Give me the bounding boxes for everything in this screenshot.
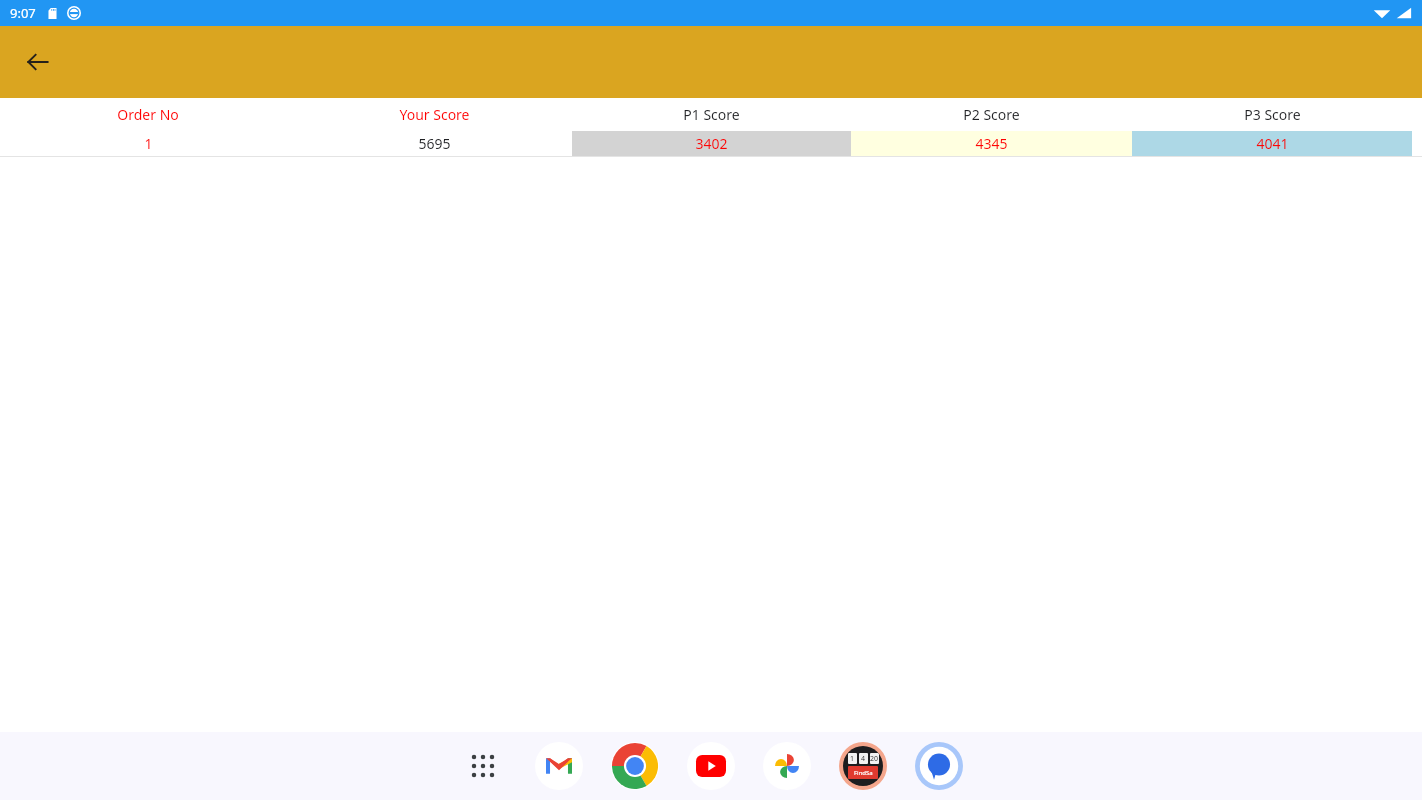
- button[interactable]: 4345: [851, 131, 1132, 156]
- button[interactable]: 1: [0, 131, 296, 156]
- staticText: 20: [870, 754, 879, 764]
- button[interactable]: 5695: [296, 131, 572, 156]
- staticText: 1: [144, 134, 153, 153]
- staticText: P3 Score: [1244, 105, 1301, 124]
- button[interactable]: Chrome: [609, 740, 661, 792]
- staticText: P1 Score: [683, 105, 740, 124]
- staticText: 4041: [1256, 134, 1289, 153]
- staticText: 4345: [975, 134, 1008, 153]
- button[interactable]: Back: [14, 38, 62, 86]
- button[interactable]: Gmail: [533, 740, 585, 792]
- staticText: 1: [850, 754, 855, 764]
- staticText: Order No: [117, 105, 179, 124]
- button[interactable]: YouTube: [685, 740, 737, 792]
- button[interactable]: 3402: [572, 131, 851, 156]
- staticText: 5695: [418, 134, 451, 153]
- staticText: Your Score: [399, 105, 470, 124]
- button[interactable]: Google Photos: [761, 740, 813, 792]
- staticText: 4: [861, 754, 866, 764]
- button[interactable]: Calendar widget: [837, 740, 889, 792]
- button[interactable]: 4041: [1132, 131, 1412, 156]
- button[interactable]: Apps: [457, 740, 509, 792]
- button[interactable]: Messages: [913, 740, 965, 792]
- staticText: 9:07: [10, 4, 36, 22]
- staticText: P2 Score: [963, 105, 1020, 124]
- staticText: 3402: [695, 134, 728, 153]
- staticText: FindSa: [854, 769, 873, 777]
